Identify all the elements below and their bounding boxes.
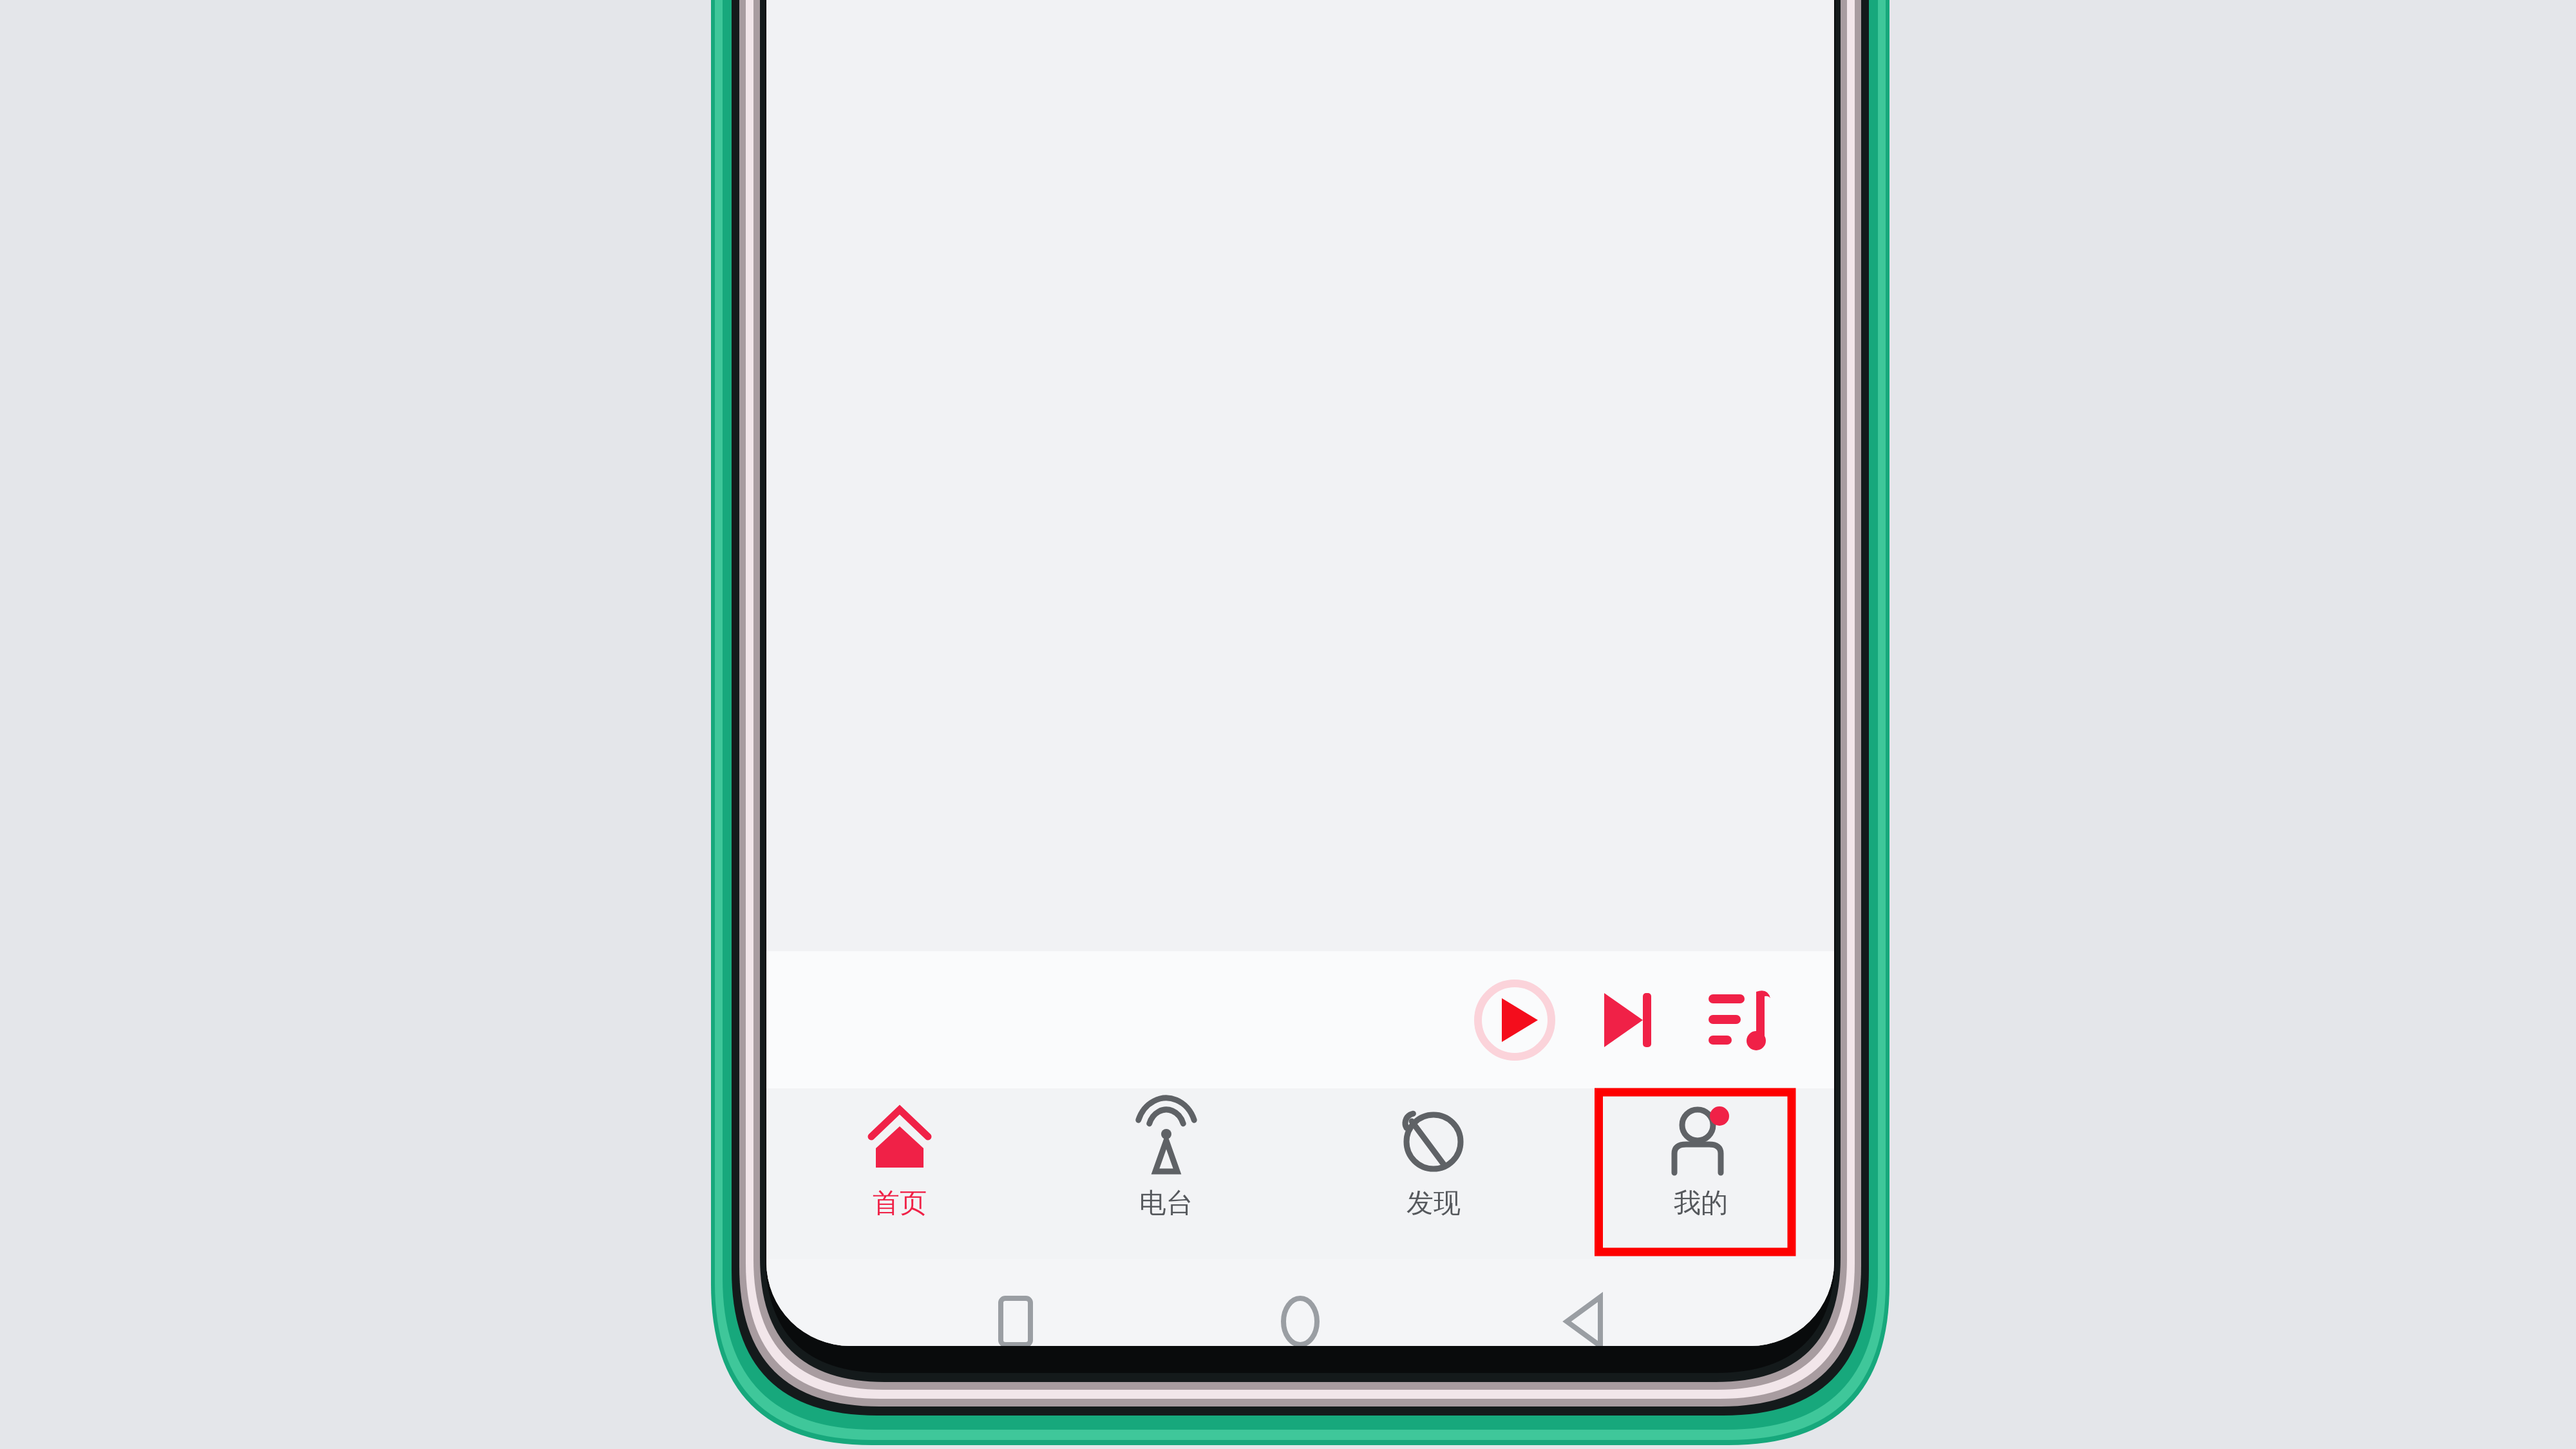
staticText: 发现 xyxy=(1406,1186,1461,1220)
button[interactable]: 我的 xyxy=(1567,1088,1834,1259)
button[interactable]: 发现 xyxy=(1300,1088,1567,1259)
staticText: 电台 xyxy=(1139,1186,1193,1220)
button[interactable]: Play xyxy=(1470,975,1560,1065)
button[interactable]: 首页 xyxy=(766,1088,1033,1259)
button[interactable]: Play xyxy=(766,951,1834,1088)
staticText: 我的 xyxy=(1674,1186,1728,1220)
button[interactable]: 电台 xyxy=(1033,1088,1300,1259)
button[interactable]: Playlist xyxy=(1695,978,1779,1062)
button[interactable]: Home xyxy=(1265,1293,1336,1346)
button[interactable]: Next track xyxy=(1587,978,1671,1062)
button[interactable]: Recent apps xyxy=(980,1293,1051,1346)
staticText: 首页 xyxy=(873,1186,927,1220)
button[interactable]: Back xyxy=(1549,1293,1620,1346)
